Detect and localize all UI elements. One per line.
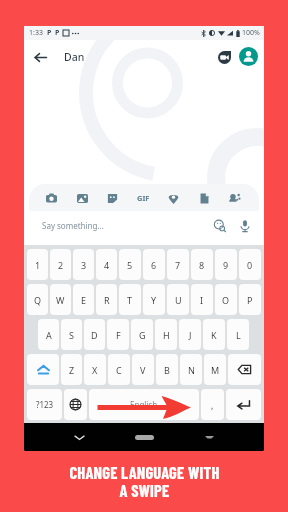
staticText: X: [92, 364, 98, 376]
staticText: 6: [151, 259, 157, 271]
button[interactable]: Z: [61, 354, 82, 385]
button[interactable]: H: [155, 319, 177, 350]
staticText: 5: [127, 259, 133, 271]
staticText: L: [236, 329, 241, 341]
button[interactable]: Gallery: [73, 189, 91, 207]
staticText: R: [104, 294, 110, 306]
button[interactable]: Profile: [239, 47, 258, 66]
staticText: Say something…: [42, 220, 104, 231]
button[interactable]: P: [239, 284, 261, 315]
button[interactable]: 9: [215, 249, 237, 280]
staticText: ?123: [36, 399, 54, 410]
button[interactable]: Home: [135, 435, 154, 440]
staticText: N: [188, 364, 195, 376]
staticText: E: [81, 294, 87, 306]
button[interactable]: 1: [27, 249, 48, 280]
staticText: F: [116, 329, 121, 341]
button[interactable]: E: [73, 284, 94, 315]
staticText: 0: [247, 259, 253, 271]
button[interactable]: Y: [143, 284, 165, 315]
button[interactable]: Camera: [42, 189, 60, 207]
button[interactable]: Contact: [225, 189, 243, 207]
button[interactable]: 4: [96, 249, 117, 280]
button[interactable]: W: [50, 284, 71, 315]
staticText: U: [175, 294, 182, 306]
button[interactable]: Voice input: [236, 217, 254, 235]
staticText: 4: [104, 259, 110, 271]
staticText: I: [200, 294, 204, 306]
button[interactable]: L: [227, 319, 249, 350]
button[interactable]: R: [96, 284, 117, 315]
staticText: M: [211, 364, 220, 376]
button[interactable]: O: [215, 284, 237, 315]
staticText: ,: [211, 399, 214, 411]
button[interactable]: 7: [167, 249, 189, 280]
button[interactable]: English: [89, 389, 199, 420]
button[interactable]: ?123: [27, 389, 62, 420]
button[interactable]: 8: [191, 249, 213, 280]
staticText: O: [222, 294, 230, 306]
button[interactable]: C: [108, 354, 130, 385]
button[interactable]: Video call: [214, 47, 234, 67]
staticText: 9: [223, 259, 229, 271]
button[interactable]: I: [191, 284, 213, 315]
button[interactable]: ,: [201, 389, 224, 420]
staticText: H: [163, 329, 170, 341]
button[interactable]: Back: [29, 46, 51, 68]
button[interactable]: File: [195, 189, 213, 207]
staticText: B: [164, 364, 170, 376]
staticText: A: [46, 329, 52, 341]
button[interactable]: 6: [143, 249, 165, 280]
button[interactable]: X: [84, 354, 106, 385]
button[interactable]: 5: [119, 249, 141, 280]
button[interactable]: N: [180, 354, 202, 385]
staticText: K: [211, 329, 217, 341]
staticText: Dan: [64, 50, 85, 64]
staticText: T: [127, 294, 133, 306]
button[interactable]: Change language: [64, 389, 87, 420]
button[interactable]: Enter: [226, 389, 261, 420]
button[interactable]: Location: [164, 189, 182, 207]
staticText: W: [56, 294, 65, 306]
button[interactable]: A: [38, 319, 59, 350]
staticText: P: [247, 294, 253, 306]
staticText: P: [55, 28, 60, 38]
button[interactable]: GIF: [134, 189, 152, 207]
button[interactable]: S: [61, 319, 82, 350]
staticText: Z: [69, 364, 75, 376]
button[interactable]: 3: [73, 249, 94, 280]
staticText: CHANGE LANGUAGE WITH A SWIPE: [69, 462, 220, 501]
staticText: V: [140, 364, 146, 376]
button[interactable]: K: [203, 319, 225, 350]
button[interactable]: Hide keyboard: [69, 427, 89, 447]
button[interactable]: Backspace: [228, 354, 261, 385]
button[interactable]: Recents: [199, 427, 219, 447]
button[interactable]: F: [107, 319, 129, 350]
staticText: Q: [34, 294, 42, 306]
staticText: English: [130, 399, 158, 410]
staticText: 3: [81, 259, 87, 271]
button[interactable]: U: [167, 284, 189, 315]
staticText: 100%: [242, 28, 260, 38]
staticText: 2: [58, 259, 64, 271]
button[interactable]: Shift: [27, 354, 59, 385]
staticText: S: [69, 329, 74, 341]
button[interactable]: Emoji search: [211, 217, 229, 235]
button[interactable]: G: [131, 319, 153, 350]
staticText: C: [116, 364, 122, 376]
button[interactable]: 2: [50, 249, 71, 280]
staticText: 7: [175, 259, 181, 271]
button[interactable]: D: [84, 319, 105, 350]
button[interactable]: B: [156, 354, 178, 385]
button[interactable]: T: [119, 284, 141, 315]
staticText: P: [47, 28, 52, 38]
button[interactable]: Stickers: [103, 189, 121, 207]
button[interactable]: 0: [239, 249, 261, 280]
staticText: 1: [35, 259, 41, 271]
button[interactable]: M: [204, 354, 226, 385]
button[interactable]: Q: [27, 284, 48, 315]
staticText: 1:33: [29, 28, 43, 38]
button[interactable]: V: [132, 354, 154, 385]
button[interactable]: J: [179, 319, 201, 350]
staticText: 8: [199, 259, 205, 271]
